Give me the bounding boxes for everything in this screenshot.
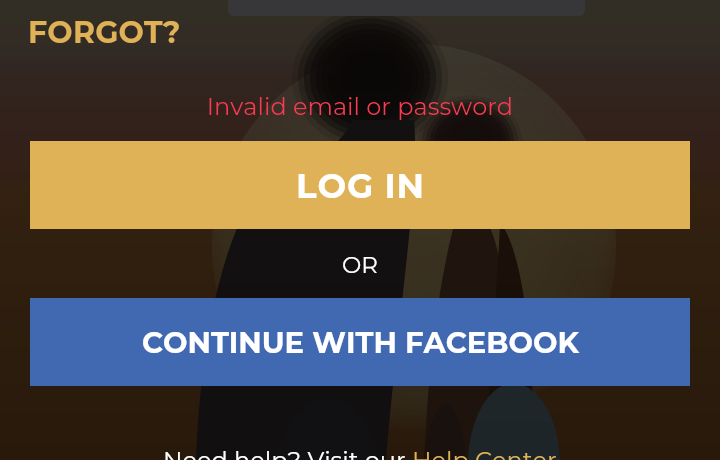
staticText: OR: [0, 251, 720, 279]
button[interactable]: FORGOT?: [28, 14, 181, 51]
staticText: Need help? Visit our: [163, 446, 412, 460]
staticText: Invalid email or password: [0, 92, 720, 121]
button[interactable]: CONTINUE WITH FACEBOOK: [30, 298, 690, 386]
button[interactable]: LOG IN: [30, 141, 690, 229]
button[interactable]: Help Center: [412, 446, 557, 460]
staticText: CONTINUE WITH FACEBOOK: [142, 325, 579, 360]
staticText: FORGOT?: [28, 14, 181, 51]
staticText: LOG IN: [296, 165, 425, 206]
